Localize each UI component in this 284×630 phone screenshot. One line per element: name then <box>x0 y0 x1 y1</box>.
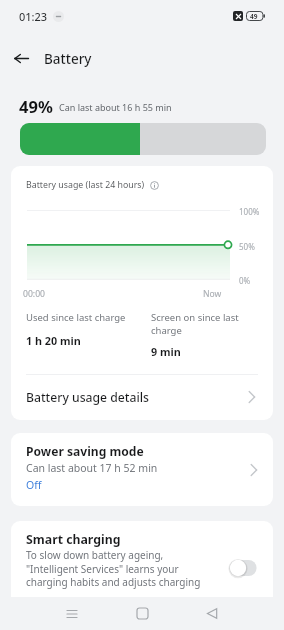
staticText: Can last about 17 h 52 min <box>26 461 158 475</box>
button[interactable]: Back <box>8 45 34 71</box>
button[interactable]: Smart charging <box>11 521 273 611</box>
staticText: 9 min <box>151 344 181 359</box>
button[interactable]: Home <box>125 597 159 630</box>
staticText: 1 h 20 min <box>26 333 81 348</box>
staticText: 00:00 <box>23 288 45 300</box>
staticText: Battery usage (last 24 hours) <box>26 179 145 191</box>
staticText: 49% <box>19 95 53 117</box>
button[interactable]: Battery usage details <box>11 374 273 420</box>
staticText: Power saving mode <box>26 443 144 459</box>
staticText: 49 <box>250 12 258 21</box>
staticText: Used since last charge <box>26 311 126 324</box>
staticText: Screen on since last charge <box>151 311 251 337</box>
staticText: Can last about 16 h 55 min <box>59 101 172 113</box>
button[interactable]: Power saving mode <box>11 433 273 506</box>
staticText: Battery <box>44 50 92 68</box>
staticText: Smart charging <box>26 531 121 548</box>
staticText: 0% <box>239 275 251 286</box>
staticText: 01:23 <box>19 9 48 24</box>
staticText: Off <box>26 478 42 492</box>
button[interactable]: Back <box>195 597 229 630</box>
staticText: 100% <box>239 206 260 217</box>
staticText: 50% <box>239 241 255 252</box>
staticText: To slow down battery ageing, "Intelligen… <box>26 548 212 589</box>
staticText: Now <box>203 288 222 300</box>
staticText: Battery usage details <box>26 389 245 406</box>
button[interactable]: Recent apps <box>55 597 89 630</box>
